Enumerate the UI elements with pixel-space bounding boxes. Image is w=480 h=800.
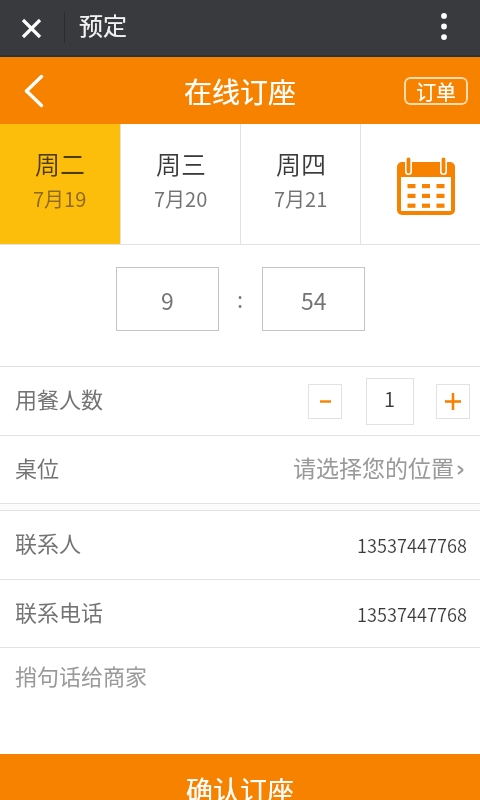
staticText: 周四 bbox=[276, 145, 327, 181]
button[interactable]: 桌位 bbox=[0, 436, 480, 503]
staticText: 联系电话 bbox=[15, 595, 104, 627]
button[interactable]: 9 bbox=[116, 267, 219, 331]
staticText: 13537447768 bbox=[357, 532, 467, 558]
staticText: 联系人 bbox=[15, 526, 82, 558]
staticText: 用餐人数 bbox=[15, 382, 104, 414]
staticText: : bbox=[237, 282, 244, 314]
button[interactable]: 联系电话 bbox=[0, 580, 480, 647]
staticText: 1 bbox=[384, 384, 396, 413]
staticText: 订单 bbox=[416, 77, 456, 105]
button[interactable]: 捎句话给商家 bbox=[0, 648, 480, 708]
staticText: 7月19 bbox=[33, 184, 87, 213]
staticText: 7月20 bbox=[154, 184, 208, 213]
button[interactable]: 周二 bbox=[0, 124, 120, 244]
button[interactable]: 周四 bbox=[241, 124, 360, 244]
button[interactable]: 用餐人数 bbox=[0, 367, 480, 435]
staticText: 桌位 bbox=[15, 451, 60, 483]
staticText: 请选择您的位置 bbox=[293, 450, 454, 483]
staticText: 确认订座 bbox=[186, 770, 294, 800]
button[interactable]: Close bbox=[11, 8, 51, 48]
staticText: 周三 bbox=[156, 145, 207, 181]
button[interactable]: Pick another date bbox=[361, 124, 480, 244]
staticText: 预定 bbox=[79, 7, 127, 42]
staticText: 54 bbox=[301, 283, 327, 316]
staticText: 7月21 bbox=[274, 184, 328, 213]
button[interactable]: More options bbox=[424, 6, 464, 46]
button[interactable]: 54 bbox=[262, 267, 365, 331]
button[interactable]: Back bbox=[14, 71, 54, 111]
button[interactable]: Decrease bbox=[308, 384, 342, 419]
button[interactable]: 周三 bbox=[121, 124, 240, 244]
button[interactable]: Increase bbox=[436, 384, 470, 419]
staticText: 13537447768 bbox=[357, 601, 467, 627]
staticText: 在线订座 bbox=[184, 71, 297, 112]
button[interactable]: 订单 bbox=[404, 77, 468, 105]
staticText: 周二 bbox=[35, 145, 86, 181]
button[interactable]: 联系人 bbox=[0, 511, 480, 579]
staticText: 捎句话给商家 bbox=[15, 659, 148, 691]
staticText: 9 bbox=[161, 283, 174, 316]
button[interactable]: 1 bbox=[366, 378, 414, 425]
button[interactable]: 确认订座 bbox=[0, 754, 480, 800]
